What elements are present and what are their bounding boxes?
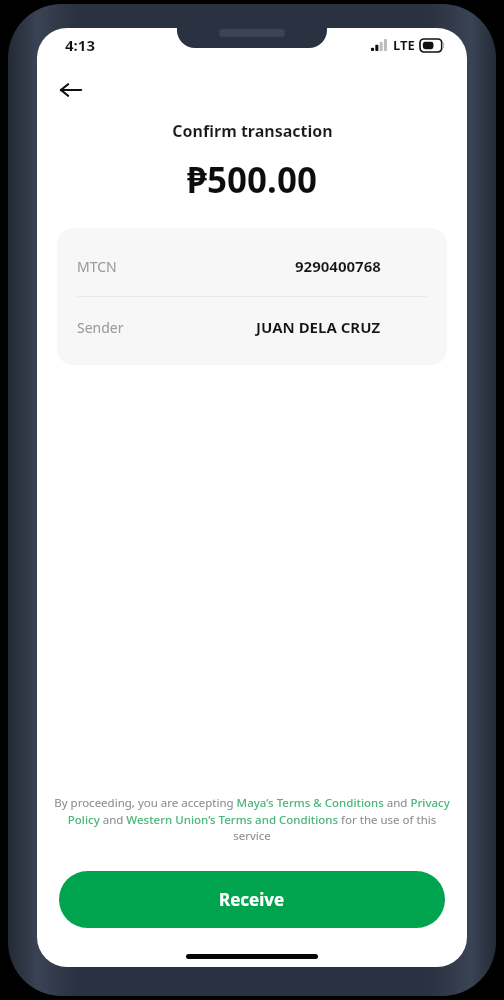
staticText: JUAN DELA CRUZ <box>256 317 381 337</box>
staticText: 9290400768 <box>295 256 381 276</box>
staticText: By proceeding, you are accepting Maya’s … <box>53 795 451 843</box>
staticText: MTCN <box>77 257 117 276</box>
button[interactable]: MTCN <box>57 236 447 296</box>
button[interactable]: By proceeding, you are accepting Maya’s … <box>53 795 451 843</box>
button[interactable]: Back <box>47 66 95 114</box>
staticText: ₱500.00 <box>187 156 317 204</box>
staticText: 4:13 <box>65 35 95 55</box>
staticText: Confirm transaction <box>172 120 333 142</box>
button[interactable]: Sender <box>57 297 447 357</box>
staticText: Sender <box>77 318 124 337</box>
staticText: Receive <box>219 888 285 911</box>
button[interactable]: Receive <box>59 871 445 928</box>
staticText: LTE <box>393 36 415 54</box>
